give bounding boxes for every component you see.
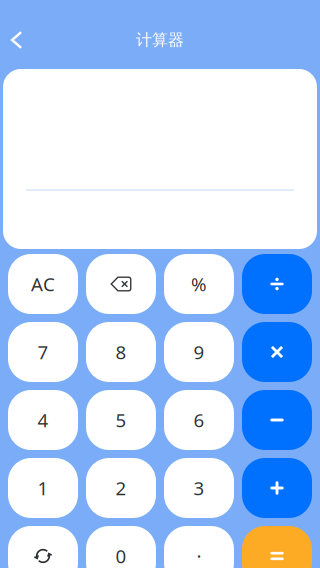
staticText: AC	[31, 272, 55, 296]
button[interactable]: Plus	[242, 458, 312, 518]
staticText: 计算器	[136, 30, 184, 50]
staticText: 9	[193, 340, 204, 364]
button[interactable]: Delete	[86, 254, 156, 314]
button[interactable]: 5	[86, 390, 156, 450]
staticText: 5	[115, 408, 126, 432]
staticText: 3	[193, 476, 204, 500]
button[interactable]: .	[164, 526, 234, 568]
staticText: .	[196, 538, 201, 563]
staticText: 7	[37, 340, 48, 364]
button[interactable]: Multiply	[242, 322, 312, 382]
button[interactable]: 9	[164, 322, 234, 382]
button[interactable]: Back	[0, 20, 33, 60]
button[interactable]: 6	[164, 390, 234, 450]
button[interactable]: %	[164, 254, 234, 314]
button[interactable]: AC	[8, 254, 78, 314]
staticText: 6	[193, 408, 204, 432]
staticText: 2	[115, 476, 126, 500]
staticText: 8	[115, 340, 126, 364]
button[interactable]: Convert units	[8, 526, 78, 568]
button[interactable]: Minus	[242, 390, 312, 450]
button[interactable]: Divide	[242, 254, 312, 314]
staticText: 1	[37, 476, 48, 500]
button[interactable]: 7	[8, 322, 78, 382]
button[interactable]: 0	[86, 526, 156, 568]
button[interactable]: 4	[8, 390, 78, 450]
staticText: %	[191, 272, 207, 296]
staticText: 0	[115, 544, 126, 568]
button[interactable]: 3	[164, 458, 234, 518]
button[interactable]: 1	[8, 458, 78, 518]
staticText: 4	[37, 408, 48, 432]
button[interactable]: Equals	[242, 526, 312, 568]
button[interactable]: 8	[86, 322, 156, 382]
button[interactable]: 2	[86, 458, 156, 518]
